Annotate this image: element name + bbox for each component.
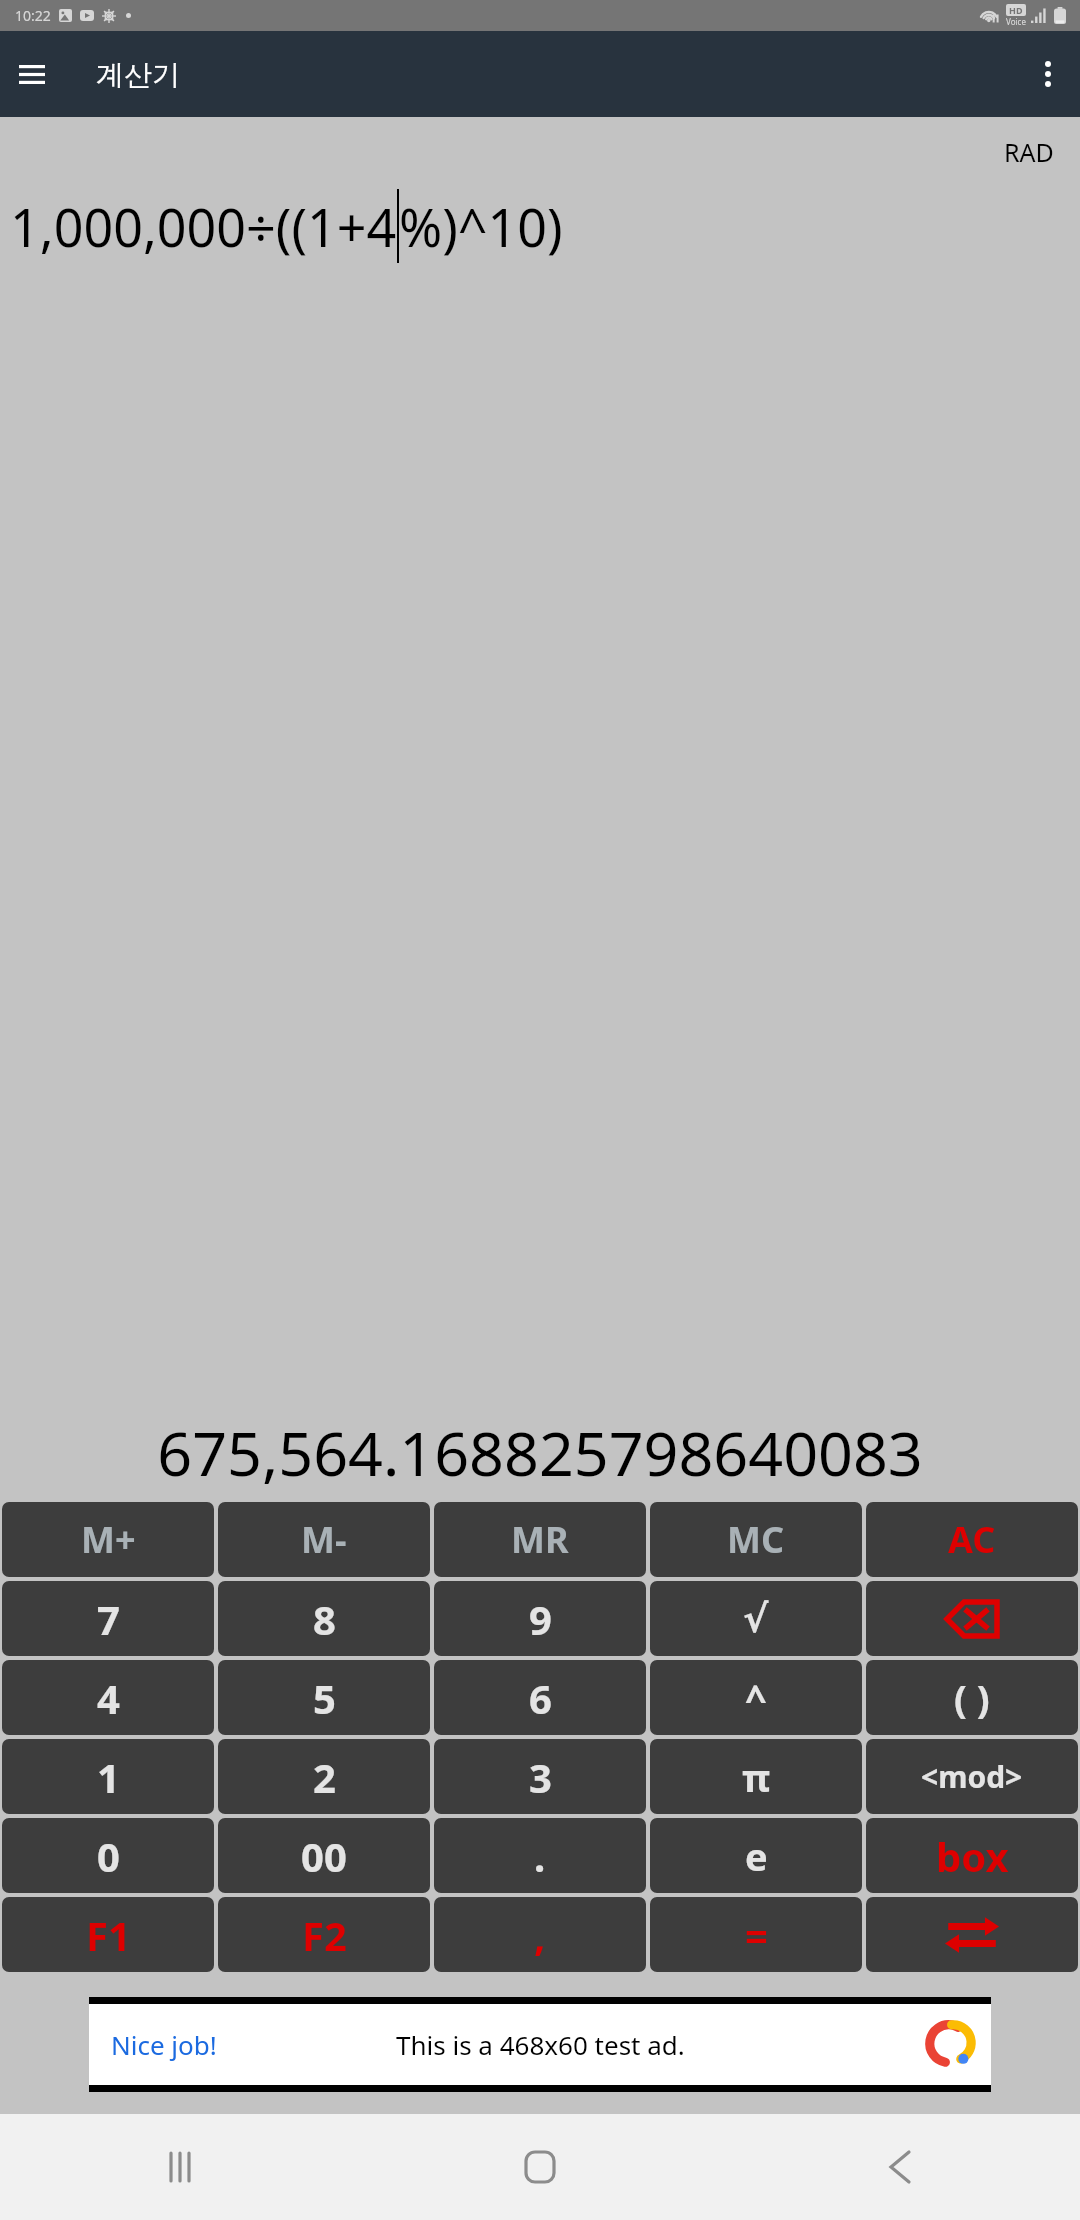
button[interactable]: . — [434, 1818, 646, 1893]
button[interactable]: F1 — [2, 1897, 214, 1972]
button[interactable]: 8 — [218, 1581, 430, 1656]
button[interactable]: ( ) — [866, 1660, 1078, 1735]
staticText: MC — [727, 1515, 785, 1564]
staticText: 6 — [529, 1671, 552, 1725]
button[interactable]: M+ — [2, 1502, 214, 1577]
button[interactable]: 2 — [218, 1739, 430, 1814]
button[interactable]: , — [434, 1897, 646, 1972]
button[interactable]: <mod> — [866, 1739, 1078, 1814]
button[interactable]: 1 — [2, 1739, 214, 1814]
staticText: √ — [743, 1597, 769, 1641]
staticText: 4 — [97, 1671, 120, 1725]
button[interactable]: Home — [480, 2114, 600, 2220]
button[interactable]: ^ — [650, 1660, 862, 1735]
button[interactable]: 6 — [434, 1660, 646, 1735]
staticText: 1,000,000÷((1+4 — [10, 191, 397, 262]
staticText: 7 — [97, 1592, 120, 1646]
staticText: %)^10) — [399, 191, 563, 262]
button[interactable]: Backspace — [866, 1581, 1078, 1656]
staticText: F1 — [86, 1908, 131, 1962]
button[interactable]: MC — [650, 1502, 862, 1577]
button[interactable]: MR — [434, 1502, 646, 1577]
button[interactable]: 9 — [434, 1581, 646, 1656]
staticText: , — [534, 1908, 546, 1962]
button[interactable]: 0 — [2, 1818, 214, 1893]
staticText: 9 — [529, 1592, 552, 1646]
button[interactable]: AC — [866, 1502, 1078, 1577]
button[interactable]: e — [650, 1818, 862, 1893]
button[interactable]: 3 — [434, 1739, 646, 1814]
staticText: Voice — [1006, 16, 1026, 27]
button[interactable]: = — [650, 1897, 862, 1972]
button[interactable]: Menu — [0, 42, 64, 106]
staticText: M- — [301, 1515, 347, 1564]
button[interactable]: √ — [650, 1581, 862, 1656]
button[interactable]: 7 — [2, 1581, 214, 1656]
staticText: AC — [948, 1515, 996, 1564]
staticText: This is a 468x60 test ad. — [396, 2027, 685, 2062]
button[interactable]: 5 — [218, 1660, 430, 1735]
button[interactable]: Recent apps — [120, 2114, 240, 2220]
staticText: MR — [511, 1515, 569, 1564]
staticText: 계산기 — [96, 57, 180, 92]
staticText: 5 — [313, 1671, 336, 1725]
staticText: . — [534, 1829, 546, 1883]
staticText: 0 — [97, 1829, 120, 1883]
staticText: <mod> — [921, 1756, 1023, 1797]
staticText: 00 — [301, 1829, 347, 1883]
button[interactable]: 4 — [2, 1660, 214, 1735]
staticText: box — [936, 1829, 1009, 1883]
staticText: = — [745, 1908, 768, 1962]
button[interactable]: π — [650, 1739, 862, 1814]
staticText: RAD — [1004, 135, 1054, 169]
staticText: ( ) — [954, 1672, 990, 1724]
staticText: Nice job! — [111, 2027, 217, 2062]
staticText: F2 — [302, 1908, 347, 1962]
staticText: e — [745, 1830, 768, 1882]
staticText: π — [742, 1751, 771, 1803]
staticText: 1 — [97, 1750, 120, 1804]
button[interactable]: F2 — [218, 1897, 430, 1972]
button[interactable]: Back — [840, 2114, 960, 2220]
staticText: HD — [1009, 4, 1023, 16]
staticText: 8 — [313, 1592, 336, 1646]
staticText: ^ — [745, 1672, 767, 1724]
button[interactable]: box — [866, 1818, 1078, 1893]
staticText: M+ — [81, 1515, 136, 1564]
staticText: 2 — [313, 1750, 336, 1804]
staticText: 675,564.168825798640083 — [6, 1411, 1074, 1494]
button[interactable]: Swap — [866, 1897, 1078, 1972]
button[interactable]: M- — [218, 1502, 430, 1577]
button[interactable]: 00 — [218, 1818, 430, 1893]
staticText: 10:22 — [15, 6, 51, 25]
staticText: 3 — [529, 1750, 552, 1804]
button[interactable]: More options — [1016, 42, 1080, 106]
